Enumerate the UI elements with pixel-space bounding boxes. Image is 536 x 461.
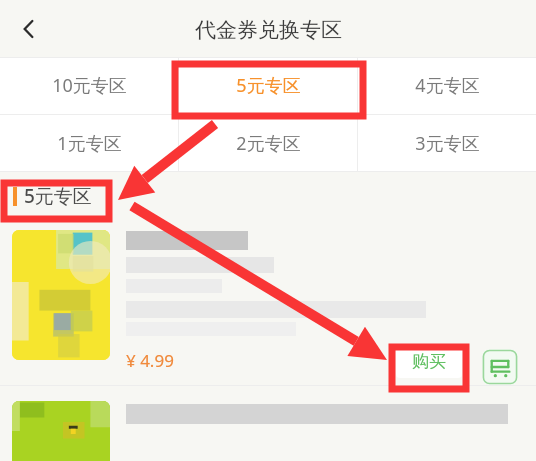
button[interactable]: 购买 xyxy=(396,344,462,378)
button[interactable]: 5元专区 xyxy=(179,57,357,114)
staticText: 2元专区 xyxy=(236,131,301,156)
staticText: 代金券兑换专区 xyxy=(195,17,342,43)
button[interactable]: 5元专区 xyxy=(0,182,536,210)
staticText: 4元专区 xyxy=(415,73,480,98)
button[interactable]: 10元专区 xyxy=(0,57,178,114)
button[interactable]: 1元专区 xyxy=(0,115,178,172)
button[interactable]: 2元专区 xyxy=(179,115,357,172)
button[interactable]: Back xyxy=(6,6,52,52)
staticText: 5元专区 xyxy=(24,183,92,209)
button[interactable]: Add to cart xyxy=(482,349,518,385)
button[interactable] xyxy=(0,386,536,461)
staticText: 10元专区 xyxy=(52,73,127,98)
button[interactable]: 4元专区 xyxy=(358,57,536,114)
staticText: ¥ 4.99 xyxy=(126,349,174,372)
staticText: 5元专区 xyxy=(236,73,301,98)
button[interactable]: 3元专区 xyxy=(358,115,536,172)
staticText: 1元专区 xyxy=(57,131,122,156)
staticText: 购买 xyxy=(412,351,446,372)
button[interactable]: ¥ 4.99 xyxy=(0,223,536,385)
staticText: 3元专区 xyxy=(415,131,480,156)
